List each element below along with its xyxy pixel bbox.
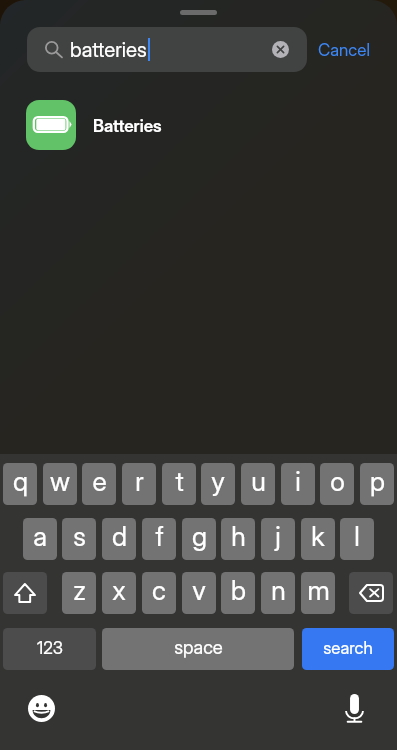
button[interactable]: 123	[3, 628, 96, 670]
staticText: i	[295, 465, 301, 497]
staticText: c	[152, 574, 166, 606]
staticText: n	[271, 574, 286, 606]
button[interactable]: s	[62, 518, 96, 560]
button[interactable]: b	[221, 572, 255, 614]
button[interactable]: Shift	[3, 572, 47, 614]
button[interactable]: Emoji keyboard	[28, 695, 55, 722]
button[interactable]: Voice input	[345, 694, 364, 723]
button[interactable]: a	[23, 518, 57, 560]
button[interactable]: z	[62, 572, 96, 614]
button[interactable]: Clear text	[272, 41, 289, 58]
staticText: k	[311, 520, 325, 552]
staticText: e	[92, 465, 107, 497]
staticText: v	[192, 574, 206, 606]
staticText: search	[323, 638, 373, 659]
button[interactable]: p	[360, 463, 394, 505]
staticText: r	[135, 465, 144, 497]
staticText: q	[13, 465, 28, 497]
button[interactable]: search	[302, 628, 394, 670]
staticText: y	[211, 465, 225, 497]
button[interactable]: f	[142, 518, 176, 560]
button[interactable]: e	[82, 463, 116, 505]
button[interactable]: space	[102, 628, 294, 670]
staticText: w	[50, 465, 70, 497]
button[interactable]: batteries	[27, 27, 307, 72]
button[interactable]: u	[241, 463, 275, 505]
staticText: d	[112, 520, 127, 552]
staticText: space	[174, 636, 223, 658]
staticText: m	[307, 574, 330, 606]
button[interactable]: Backspace	[349, 572, 393, 614]
button[interactable]: q	[3, 463, 37, 505]
button[interactable]: r	[122, 463, 156, 505]
staticText: a	[33, 520, 47, 552]
button[interactable]: j	[261, 518, 295, 560]
staticText: p	[370, 465, 385, 497]
button[interactable]: l	[340, 518, 374, 560]
staticText: h	[231, 520, 246, 552]
staticText: t	[175, 465, 184, 497]
button[interactable]: h	[221, 518, 255, 560]
button[interactable]: c	[142, 572, 176, 614]
staticText: s	[73, 520, 86, 552]
staticText: 123	[37, 638, 63, 659]
button[interactable]: d	[102, 518, 136, 560]
staticText: f	[155, 520, 164, 552]
button[interactable]: w	[43, 463, 77, 505]
button[interactable]: g	[182, 518, 216, 560]
staticText: l	[354, 520, 360, 552]
staticText: g	[192, 520, 207, 552]
button[interactable]: Batteries	[0, 88, 397, 162]
button[interactable]: i	[281, 463, 315, 505]
button[interactable]: n	[261, 572, 295, 614]
staticText: z	[73, 574, 86, 606]
staticText: Cancel	[318, 40, 370, 61]
button[interactable]: m	[301, 572, 335, 614]
staticText: Batteries	[93, 116, 162, 137]
button[interactable]: t	[162, 463, 196, 505]
staticText: u	[251, 465, 266, 497]
staticText: x	[112, 574, 126, 606]
button[interactable]: Cancel	[309, 28, 378, 73]
staticText: o	[330, 465, 345, 497]
button[interactable]: v	[182, 572, 216, 614]
staticText: j	[275, 520, 281, 552]
button[interactable]: o	[320, 463, 354, 505]
button[interactable]: x	[102, 572, 136, 614]
staticText: batteries	[70, 37, 147, 62]
button[interactable]: y	[201, 463, 235, 505]
staticText: b	[231, 574, 246, 606]
button[interactable]: k	[301, 518, 335, 560]
